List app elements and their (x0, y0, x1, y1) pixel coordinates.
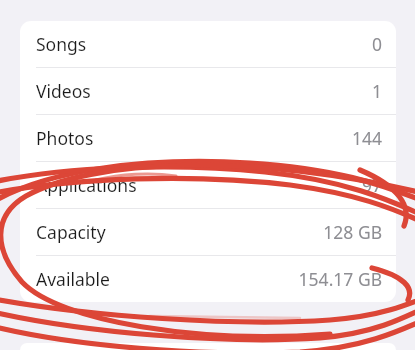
staticText: 144 (351, 126, 382, 150)
staticText: Applications (36, 173, 137, 197)
staticText: Photos (36, 126, 94, 150)
button[interactable]: Photos (20, 115, 396, 161)
staticText: Capacity (36, 220, 106, 244)
staticText: 0 (371, 32, 382, 56)
button[interactable]: Capacity (20, 209, 396, 255)
button[interactable]: Applications (20, 162, 396, 208)
button[interactable] (20, 343, 396, 350)
button[interactable]: Songs (20, 21, 396, 67)
button[interactable]: Available (20, 256, 396, 302)
staticText: 97 (361, 173, 382, 197)
staticText: 128 GB (323, 220, 382, 244)
button[interactable]: Videos (20, 68, 396, 114)
staticText: 154.17 GB (298, 267, 382, 291)
staticText: Available (36, 267, 110, 291)
staticText: 1 (371, 79, 382, 103)
staticText: Videos (36, 79, 91, 103)
staticText: Songs (36, 32, 87, 56)
